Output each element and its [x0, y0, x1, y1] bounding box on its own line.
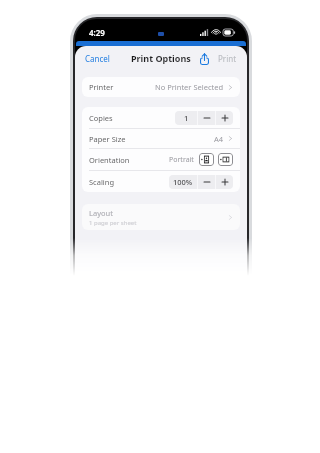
- button[interactable]: Decrease: [198, 111, 215, 125]
- staticText: Layout: [89, 208, 113, 218]
- staticText: 100%: [173, 177, 193, 187]
- staticText: 4:29: [89, 27, 105, 38]
- button[interactable]: Cancel: [75, 48, 118, 69]
- staticText: Printer: [89, 82, 114, 92]
- staticText: 1 page per sheet: [89, 219, 137, 227]
- button[interactable]: Decrease: [198, 175, 215, 189]
- staticText: Portrait: [169, 155, 194, 165]
- button[interactable]: Print: [216, 48, 239, 69]
- staticText: 1: [184, 113, 189, 123]
- staticText: Cancel: [85, 53, 110, 64]
- staticText: Paper Size: [89, 134, 126, 144]
- button[interactable]: Share: [197, 50, 212, 68]
- staticText: Orientation: [89, 155, 130, 165]
- button[interactable]: Increase: [216, 111, 233, 125]
- button[interactable]: Landscape: [218, 153, 233, 166]
- staticText: Scaling: [89, 177, 115, 187]
- staticText: Print: [218, 53, 237, 64]
- button[interactable]: Portrait: [199, 153, 214, 166]
- button[interactable]: Paper Size: [82, 129, 240, 148]
- staticText: Print Options: [131, 52, 191, 64]
- button[interactable]: Layout: [82, 204, 240, 230]
- staticText: Copies: [89, 113, 113, 123]
- staticText: No Printer Selected: [155, 82, 224, 92]
- button[interactable]: Increase: [216, 175, 233, 189]
- staticText: A4: [214, 134, 224, 144]
- button[interactable]: Printer: [82, 77, 240, 97]
